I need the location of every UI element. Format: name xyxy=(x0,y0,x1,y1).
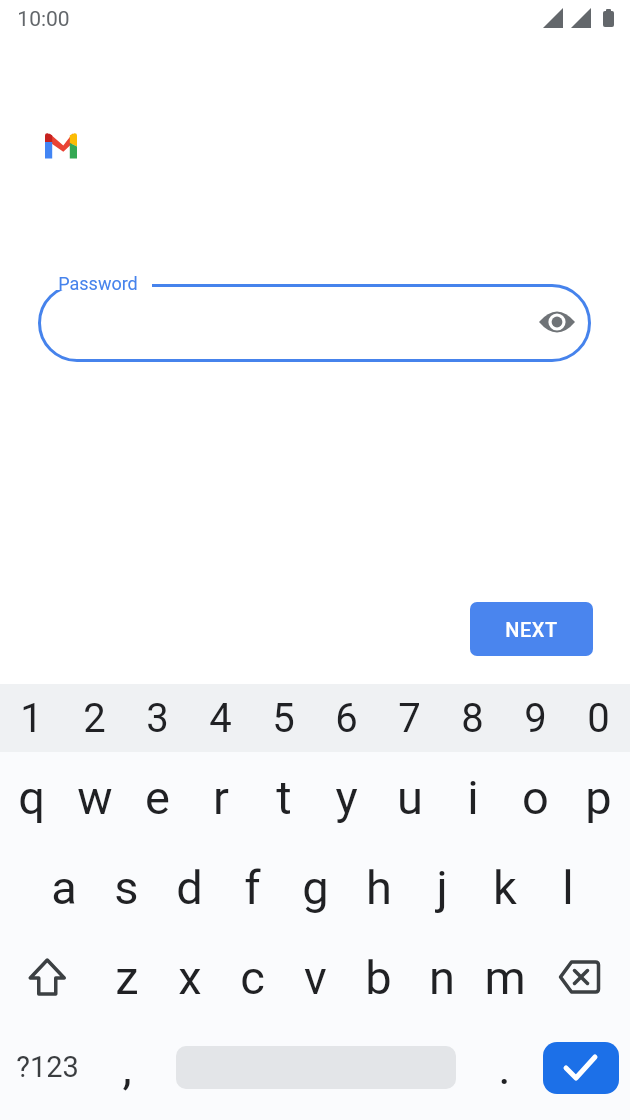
button[interactable]: 4 xyxy=(189,684,252,752)
staticText: x xyxy=(178,950,202,1005)
button[interactable]: 3 xyxy=(126,684,189,752)
staticText: b xyxy=(365,950,392,1005)
staticText: 9 xyxy=(524,695,547,742)
button[interactable]: 8 xyxy=(441,684,504,752)
staticText: t xyxy=(276,770,292,825)
button[interactable] xyxy=(158,1022,473,1112)
staticText: ?123 xyxy=(16,1050,79,1084)
button[interactable]: 9 xyxy=(504,684,567,752)
button[interactable]: o xyxy=(504,752,567,842)
button[interactable]: c xyxy=(221,932,284,1022)
staticText: l xyxy=(562,860,574,915)
button[interactable]: v xyxy=(284,932,347,1022)
button[interactable]: Password xyxy=(38,284,591,362)
button[interactable]: r xyxy=(189,752,252,842)
button[interactable]: y xyxy=(315,752,378,842)
staticText: o xyxy=(522,770,549,825)
button[interactable]: g xyxy=(284,842,347,932)
button[interactable]: f xyxy=(221,842,284,932)
staticText: f xyxy=(244,860,261,915)
staticText: 4 xyxy=(209,695,232,742)
button[interactable]: x xyxy=(158,932,221,1022)
button[interactable]: l xyxy=(536,842,599,932)
button[interactable]: k xyxy=(473,842,536,932)
button[interactable]: ?123 xyxy=(0,1022,95,1112)
button[interactable] xyxy=(0,932,95,1022)
staticText: p xyxy=(585,770,612,825)
button[interactable]: e xyxy=(126,752,189,842)
staticText: NEXT xyxy=(505,618,558,641)
staticText: k xyxy=(493,860,517,915)
staticText: 10:00 xyxy=(17,7,70,32)
staticText: , xyxy=(122,1040,132,1095)
staticText: e xyxy=(145,770,170,825)
staticText: Password xyxy=(58,273,138,294)
button[interactable]: . xyxy=(473,1022,536,1112)
button[interactable]: u xyxy=(378,752,441,842)
staticText: q xyxy=(18,770,45,825)
button[interactable]: 5 xyxy=(252,684,315,752)
staticText: 7 xyxy=(398,695,421,742)
staticText: u xyxy=(397,770,423,825)
button[interactable]: q xyxy=(0,752,63,842)
staticText: y xyxy=(335,770,358,825)
button[interactable]: 2 xyxy=(63,684,126,752)
button[interactable]: n xyxy=(410,932,473,1022)
staticText: g xyxy=(302,860,329,915)
button[interactable]: z xyxy=(95,932,158,1022)
staticText: a xyxy=(51,860,77,915)
staticText: 8 xyxy=(461,695,484,742)
button[interactable] xyxy=(536,1022,630,1112)
staticText: v xyxy=(304,950,327,1005)
button[interactable]: w xyxy=(63,752,126,842)
button[interactable]: 1 xyxy=(0,684,63,752)
staticText: 1 xyxy=(20,695,43,742)
staticText: s xyxy=(114,860,139,915)
staticText: . xyxy=(498,1040,511,1095)
staticText: m xyxy=(484,950,526,1005)
button[interactable]: h xyxy=(347,842,410,932)
button[interactable]: d xyxy=(158,842,221,932)
staticText: z xyxy=(115,950,139,1005)
button[interactable]: i xyxy=(441,752,504,842)
staticText: 2 xyxy=(83,695,106,742)
button[interactable]: a xyxy=(32,842,95,932)
staticText: h xyxy=(366,860,392,915)
button[interactable]: m xyxy=(473,932,536,1022)
staticText: r xyxy=(213,770,229,825)
button[interactable]: , xyxy=(95,1022,158,1112)
button[interactable] xyxy=(536,932,630,1022)
button[interactable]: 0 xyxy=(567,684,630,752)
staticText: d xyxy=(176,860,203,915)
button[interactable]: t xyxy=(252,752,315,842)
button[interactable]: p xyxy=(567,752,630,842)
button[interactable]: b xyxy=(347,932,410,1022)
staticText: c xyxy=(240,950,265,1005)
staticText: n xyxy=(429,950,455,1005)
staticText: 6 xyxy=(335,695,358,742)
staticText: 5 xyxy=(272,695,295,742)
staticText: i xyxy=(467,770,479,825)
button[interactable]: 7 xyxy=(378,684,441,752)
staticText: 0 xyxy=(587,695,610,742)
button[interactable]: s xyxy=(95,842,158,932)
staticText: j xyxy=(436,860,448,915)
staticText: w xyxy=(77,770,113,825)
button[interactable]: 6 xyxy=(315,684,378,752)
staticText: 3 xyxy=(146,695,169,742)
button[interactable]: j xyxy=(410,842,473,932)
button[interactable]: NEXT xyxy=(470,602,593,656)
